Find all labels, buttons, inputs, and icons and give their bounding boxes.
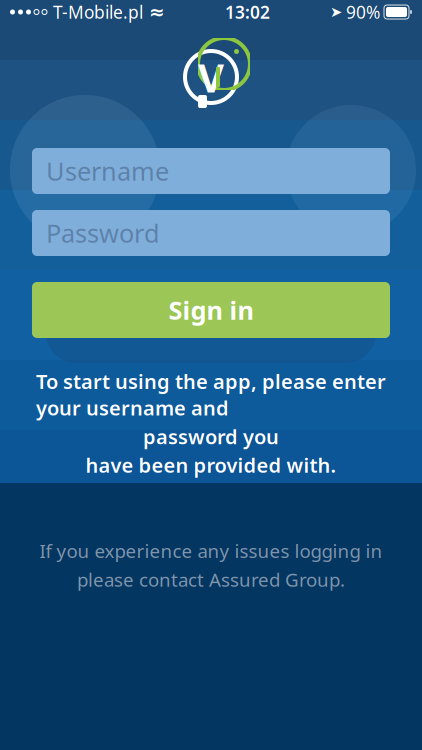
button[interactable]: Sign in	[32, 282, 390, 338]
staticText: have been provided with.	[85, 452, 336, 478]
staticText: If you experience any issues logging in	[39, 538, 382, 563]
staticText: 90%	[346, 0, 380, 23]
button[interactable]: Password	[32, 210, 390, 256]
staticText: Sign in	[168, 293, 253, 327]
button[interactable]: Username	[32, 148, 390, 194]
staticText: V	[198, 50, 224, 103]
button[interactable]: please contact Assured Group.	[77, 567, 345, 592]
staticText: T-Mobile.pl	[53, 0, 143, 23]
staticText: ≈	[149, 1, 165, 23]
staticText: ➤	[330, 4, 342, 20]
staticText: To start using the app, please enter you…	[36, 368, 386, 421]
staticText: Username	[46, 154, 169, 188]
staticText: Password	[46, 216, 160, 250]
staticText: password you	[143, 423, 279, 450]
staticText: 13:02	[225, 0, 270, 23]
staticText: please contact Assured Group.	[77, 567, 345, 592]
